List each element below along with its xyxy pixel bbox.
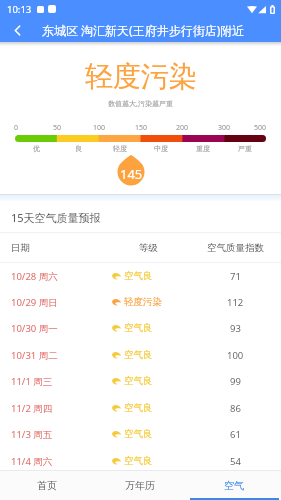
button[interactable]: 10/28 周六 — [0, 263, 281, 289]
staticText: 99 — [230, 375, 241, 388]
staticText: 200 — [176, 123, 189, 133]
staticText: 严重 — [238, 144, 252, 153]
staticText: 150 — [135, 123, 148, 133]
button[interactable]: 11/3 周五 — [0, 421, 281, 447]
button[interactable]: 首页 — [0, 470, 93, 500]
button[interactable]: 10/29 周日 — [0, 289, 281, 315]
staticText: 空气良 — [124, 375, 153, 387]
staticText: 10/28 周六 — [11, 270, 58, 283]
staticText: 优 — [33, 144, 40, 153]
staticText: 100 — [93, 123, 106, 133]
staticText: 15天空气质量预报 — [11, 210, 101, 225]
staticText: 中度 — [154, 144, 168, 153]
staticText: 112 — [227, 296, 244, 309]
staticText: 500 — [254, 123, 267, 133]
staticText: 54 — [230, 455, 241, 468]
button[interactable]: 10/30 周一 — [0, 315, 281, 341]
staticText: 100 — [227, 349, 244, 362]
staticText: 万年历 — [125, 479, 155, 492]
staticText: 空气良 — [124, 402, 153, 414]
staticText: 300 — [218, 123, 231, 133]
staticText: 空气 — [224, 479, 244, 492]
staticText: 93 — [230, 322, 241, 335]
staticText: 空气良 — [124, 428, 153, 440]
staticText: 10/31 周二 — [11, 349, 58, 362]
staticText: 轻度污染 — [124, 296, 162, 308]
staticText: 空气良 — [124, 322, 153, 334]
button[interactable]: 11/4 周六 — [0, 448, 281, 474]
staticText: 重度 — [196, 144, 210, 153]
staticText: 等级 — [139, 242, 158, 254]
staticText: 东城区 淘汇新天(王府井步行街店)附近 — [42, 22, 245, 38]
button[interactable]: 11/1 周三 — [0, 368, 281, 394]
staticText: 首页 — [37, 479, 57, 492]
button[interactable]: 空气 — [187, 470, 281, 500]
staticText: 50 — [53, 123, 62, 133]
staticText: 良 — [75, 144, 82, 153]
staticText: 轻度 — [113, 144, 127, 153]
button[interactable]: 10/31 周二 — [0, 342, 281, 368]
button[interactable]: 11/2 周四 — [0, 395, 281, 421]
staticText: 11/1 周三 — [11, 375, 53, 388]
staticText: 71 — [230, 270, 241, 283]
button[interactable]: 万年历 — [93, 470, 187, 500]
staticText: 空气良 — [124, 270, 153, 282]
staticText: 61 — [230, 428, 241, 441]
staticText: 数值越大,污染越严重 — [108, 99, 173, 109]
staticText: 0 — [14, 123, 19, 133]
staticText: 10:13 — [7, 3, 32, 16]
staticText: 空气质量指数 — [207, 242, 264, 254]
staticText: 145 — [120, 165, 143, 183]
staticText: 11/2 周四 — [11, 402, 53, 415]
staticText: 空气良 — [124, 455, 153, 467]
button[interactable]: Back — [0, 18, 34, 42]
staticText: 轻度污染 — [85, 59, 197, 94]
staticText: 11/4 周六 — [11, 455, 53, 468]
staticText: 日期 — [11, 242, 30, 254]
staticText: 10/30 周一 — [11, 322, 58, 335]
staticText: 86 — [230, 402, 241, 415]
staticText: 11/3 周五 — [11, 428, 53, 441]
staticText: 空气良 — [124, 349, 153, 361]
staticText: 10/29 周日 — [11, 296, 58, 309]
